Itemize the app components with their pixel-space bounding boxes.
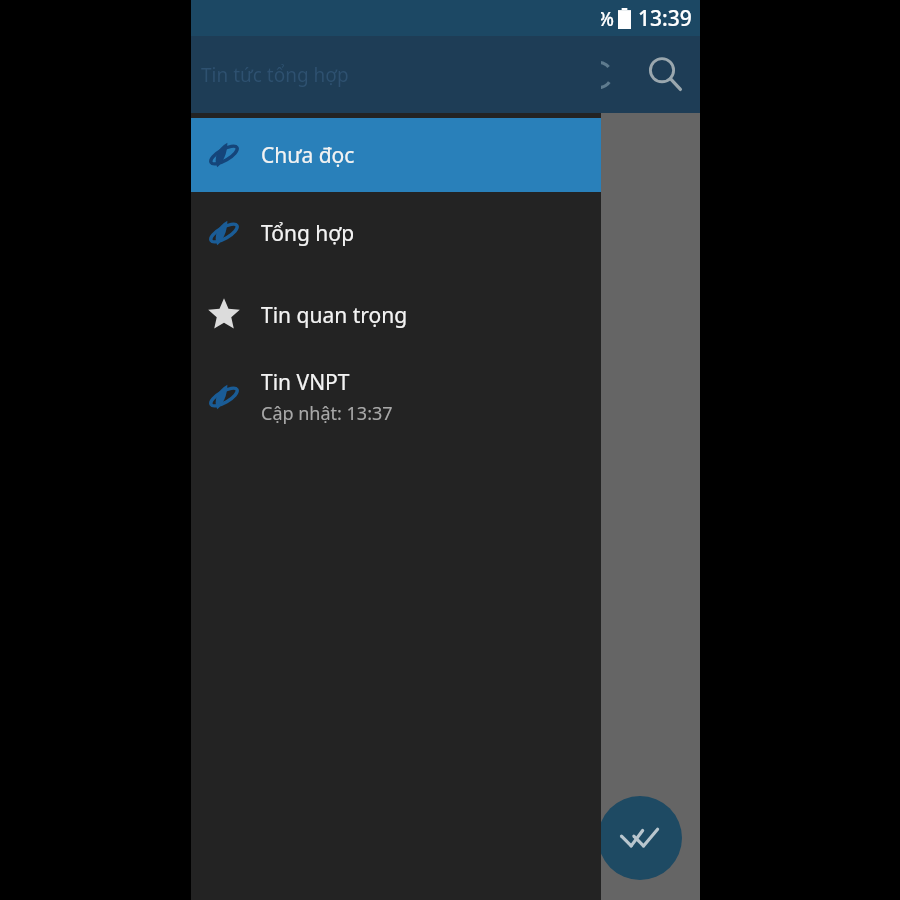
staticText: 13:39 [638, 4, 692, 33]
button[interactable]: Tin quan trọng [191, 274, 601, 356]
button[interactable]: Mark all as read [598, 796, 682, 880]
staticText: Tổng hợp [261, 219, 355, 248]
staticText: Tin tức tổng hợp [201, 62, 349, 88]
button[interactable]: Search [632, 41, 700, 109]
button[interactable]: Refresh [566, 42, 632, 108]
button[interactable]: Tổng hợp [191, 192, 601, 274]
staticText: Tin VNPT [261, 368, 350, 397]
button[interactable]: Chưa đọc [191, 118, 601, 192]
staticText: Chưa đọc [261, 141, 355, 170]
button[interactable]: Tin VNPT [191, 356, 601, 438]
staticText: Tin tức tổng hợp [201, 62, 349, 88]
staticText: Tin quan trọng [261, 301, 408, 330]
staticText: Cập nhật: 13:37 [261, 401, 393, 426]
staticText: 86% [576, 6, 614, 32]
